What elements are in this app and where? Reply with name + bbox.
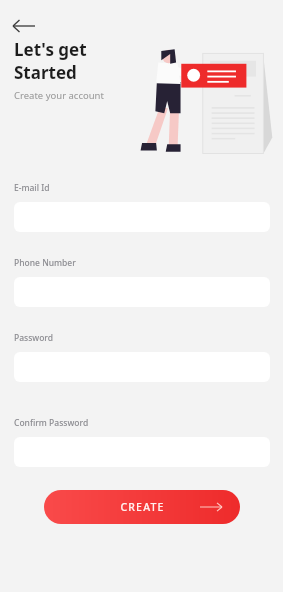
staticText: Phone Number bbox=[14, 257, 76, 269]
staticText: Started bbox=[14, 61, 77, 84]
staticText: Let's get bbox=[14, 38, 87, 61]
staticText: Password bbox=[14, 332, 54, 344]
staticText: CREATE bbox=[120, 500, 165, 514]
staticText: Create your account bbox=[14, 89, 104, 102]
button[interactable]: CREATE bbox=[44, 490, 240, 524]
staticText: Confirm Password bbox=[14, 417, 89, 429]
staticText: E-mail Id bbox=[14, 182, 50, 194]
button[interactable]: Back bbox=[6, 8, 42, 44]
